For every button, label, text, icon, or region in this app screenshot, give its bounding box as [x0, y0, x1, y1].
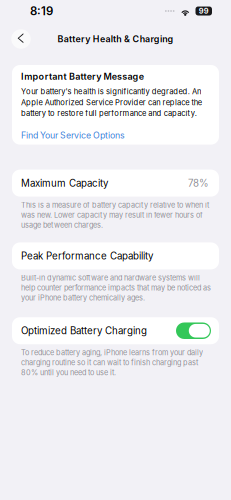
button[interactable]: Optimized Battery Charging	[12, 317, 219, 344]
staticText: Optimized Battery Charging	[21, 325, 147, 337]
staticText: Important Battery Message	[21, 71, 144, 82]
staticText: To reduce battery aging, iPhone learns f…	[21, 348, 203, 377]
staticText: Battery Health & Charging	[57, 34, 174, 44]
staticText: 99	[199, 6, 209, 15]
button[interactable]: Back	[8, 26, 34, 52]
staticText: Maximum Capacity	[21, 177, 108, 189]
staticText: Built-in dynamic software and hardware s…	[21, 273, 211, 302]
staticText: 8:19	[30, 4, 53, 18]
staticText: Peak Performance Capability	[21, 250, 153, 262]
staticText: Your battery's health is significantly d…	[21, 87, 202, 118]
staticText: Find Your Service Options	[21, 130, 125, 141]
button[interactable]: Find Your Service Options	[21, 130, 210, 141]
staticText: 78%	[188, 177, 209, 189]
staticText: This is a measure of battery capacity re…	[21, 201, 209, 229]
